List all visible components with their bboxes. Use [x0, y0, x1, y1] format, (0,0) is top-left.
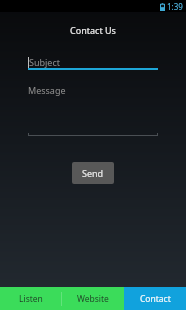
button[interactable]: Contact [124, 287, 186, 310]
button[interactable]: Listen [0, 287, 62, 310]
button[interactable]: Website [62, 287, 124, 310]
button[interactable]: Send [72, 162, 114, 184]
button[interactable]: Subject [28, 54, 158, 70]
button[interactable]: Message [28, 84, 158, 136]
other: Battery [160, 3, 165, 11]
staticText: Send [82, 167, 104, 179]
staticText: Message [28, 84, 66, 96]
staticText: Contact [140, 293, 171, 305]
staticText: Website [77, 293, 109, 305]
staticText: Contact Us [0, 24, 186, 36]
staticText: 1:39 [167, 1, 183, 12]
staticText: Listen [19, 293, 43, 305]
staticText: Subject [29, 56, 61, 68]
